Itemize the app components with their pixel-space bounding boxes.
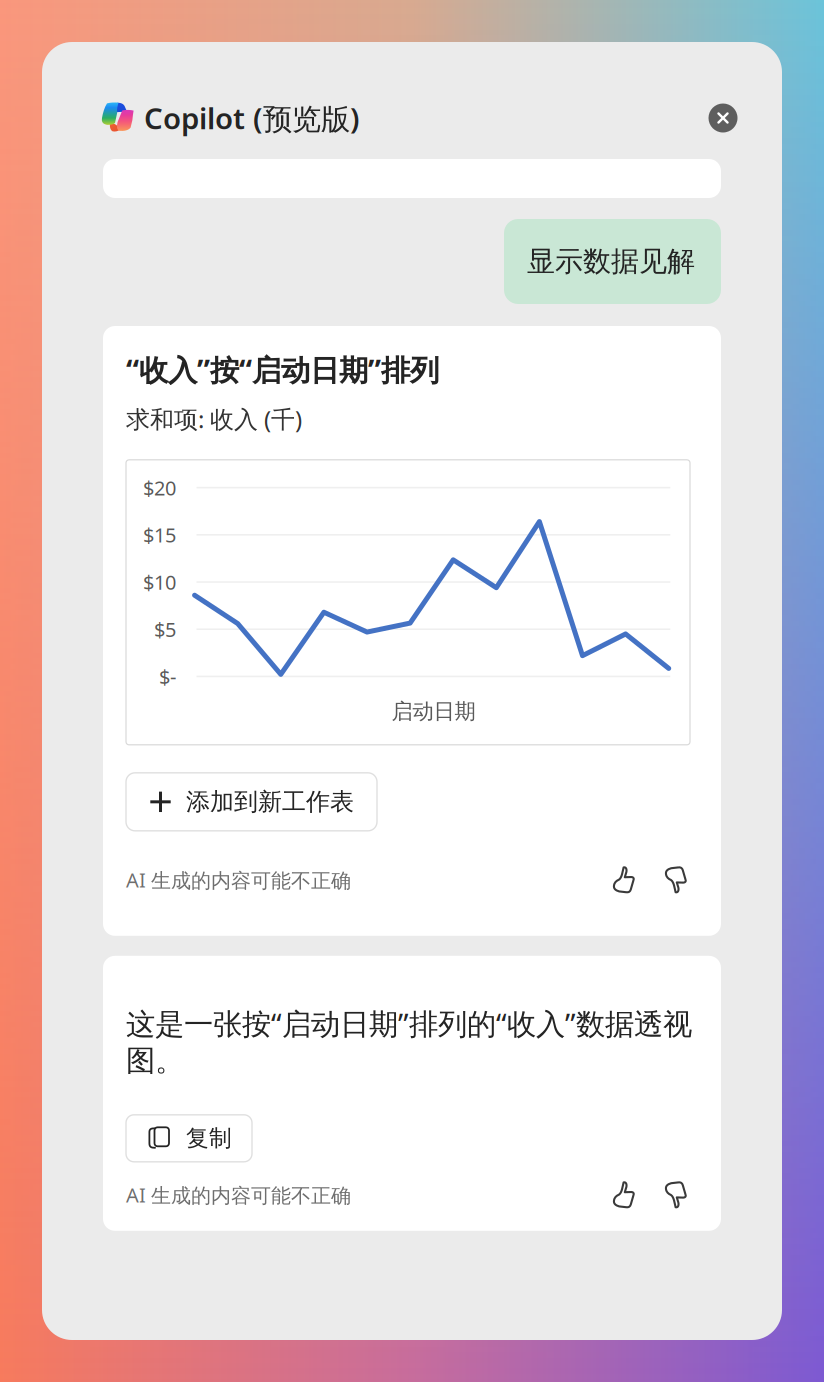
button[interactable]: 复制	[126, 1115, 252, 1162]
staticText: 添加到新工作表	[186, 787, 354, 817]
button[interactable]: 添加到新工作表	[126, 773, 377, 831]
staticText: $10	[143, 569, 176, 595]
staticText: “收入”按“启动日期”排列	[126, 350, 439, 389]
staticText: $5	[154, 616, 176, 642]
button[interactable]: 回答没帮助	[654, 862, 698, 898]
button[interactable]: 回答有帮助	[602, 1177, 646, 1213]
staticText: AI 生成的内容可能不正确	[126, 866, 351, 893]
staticText: AI 生成的内容可能不正确	[126, 1181, 351, 1208]
staticText: $15	[143, 521, 176, 548]
staticText: 复制	[186, 1124, 232, 1152]
staticText: $-	[159, 663, 176, 690]
staticText: 求和项: 收入 (千)	[126, 403, 302, 435]
button[interactable]: 回答没帮助	[654, 1177, 698, 1213]
staticText: Copilot (预览版)	[144, 98, 360, 137]
button[interactable]: 回答有帮助	[602, 862, 646, 898]
staticText: 这是一张按“启动日期”排列的“收入”数据透视图。	[126, 1004, 692, 1079]
staticText: 启动日期	[391, 698, 475, 724]
staticText: $20	[143, 474, 176, 501]
button[interactable]: 关闭	[696, 91, 750, 145]
staticText: 显示数据见解	[527, 244, 695, 279]
